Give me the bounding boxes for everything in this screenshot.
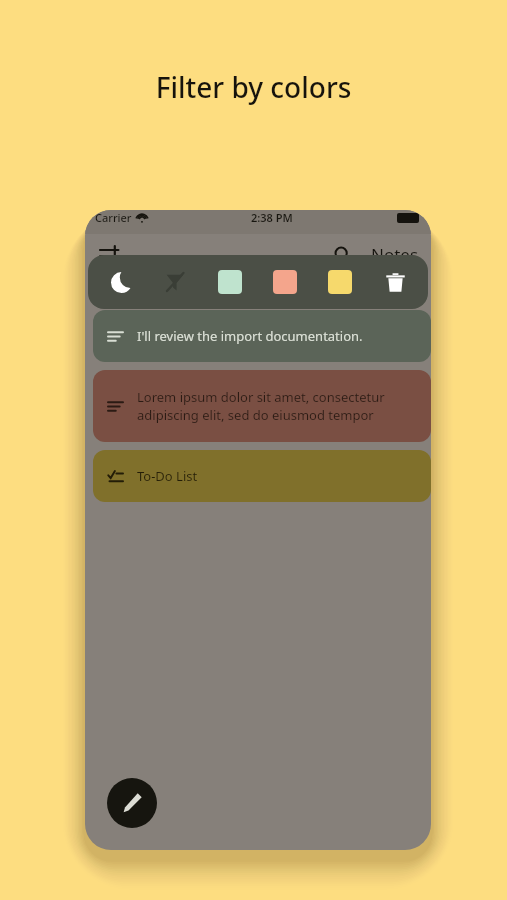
staticText: Carrier	[95, 210, 132, 225]
button[interactable]: Sort	[97, 241, 123, 267]
staticText: adipiscing elit, sed do eiusmod tempor	[137, 406, 374, 424]
button[interactable]: Filter red notes	[266, 263, 304, 301]
button[interactable]: Lorem ipsum dolor sit amet, consectetur	[93, 370, 431, 442]
button[interactable]: Delete	[376, 263, 414, 301]
staticText: Filter by colors	[0, 68, 507, 106]
staticText: Notes	[371, 243, 419, 266]
staticText: Lorem ipsum dolor sit amet, consectetur	[137, 388, 385, 406]
staticText: To-Do List	[137, 467, 198, 485]
button[interactable]: Search	[329, 241, 355, 267]
staticText: I'll review the import documentation.	[137, 327, 363, 345]
button[interactable]: Clear filter	[156, 263, 194, 301]
button[interactable]: Filter yellow notes	[321, 263, 359, 301]
button[interactable]: New note	[107, 778, 157, 828]
button[interactable]: Filter green notes	[211, 263, 249, 301]
button[interactable]: Toggle dark mode	[102, 263, 140, 301]
staticText: 2:38 PM	[251, 210, 293, 225]
button[interactable]: I'll review the import documentation.	[93, 310, 431, 362]
button[interactable]: To-Do List	[93, 450, 431, 502]
